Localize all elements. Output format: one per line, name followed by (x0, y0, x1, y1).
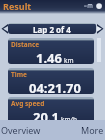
staticText: km/h (61, 115, 77, 120)
staticText: Lap 2 of 4 (33, 24, 71, 34)
staticText: km (64, 56, 74, 64)
button[interactable]: Distance (8, 38, 94, 64)
staticText: 20.1 (33, 108, 59, 120)
staticText: Result (3, 0, 32, 12)
button[interactable]: Avg speed (8, 97, 94, 120)
button[interactable]: Overview (1, 124, 41, 136)
staticText: Time (11, 70, 27, 79)
staticText: 1.46 (36, 49, 62, 64)
staticText: 04:21.70 (29, 79, 81, 94)
button[interactable]: Next lap (97, 23, 104, 34)
button[interactable]: More (81, 124, 104, 136)
staticText: Distance (11, 40, 40, 49)
button[interactable]: Previous lap (1, 23, 8, 34)
button[interactable]: Lap 2 of 4 (8, 23, 96, 34)
staticText: Avg speed (11, 99, 45, 108)
button[interactable]: Time (8, 68, 94, 94)
